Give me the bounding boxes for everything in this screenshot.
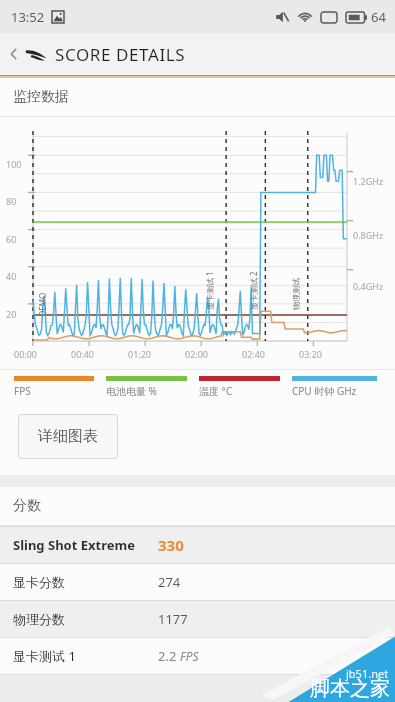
staticText: 电池电量 % xyxy=(106,384,157,398)
staticText: 02:40 xyxy=(242,348,266,360)
staticText: 01:20 xyxy=(128,348,152,360)
staticText: 13:52 xyxy=(11,8,45,26)
staticText: 脚本之家 xyxy=(310,676,390,701)
staticText: 03:20 xyxy=(299,348,323,360)
staticText: FPS xyxy=(180,648,199,664)
button[interactable]: 详细图表 xyxy=(18,414,118,459)
staticText: 监控数据 xyxy=(13,88,69,106)
button[interactable]: Back xyxy=(0,33,395,75)
staticText: DEMO xyxy=(36,292,47,316)
staticText: jb51.net xyxy=(346,666,389,681)
staticText: 显卡分数 xyxy=(13,574,145,590)
other: Back xyxy=(7,47,21,61)
staticText: 物理测试 xyxy=(291,278,301,310)
staticText: 1.2GHz xyxy=(353,175,384,187)
button[interactable]: 物理分数 xyxy=(0,601,395,637)
button[interactable]: 显卡分数 xyxy=(0,564,395,600)
staticText: 显卡测试 1 xyxy=(204,271,215,310)
staticText: 1177 xyxy=(158,610,188,628)
staticText: 详细图表 xyxy=(38,427,98,446)
button[interactable]: 显卡测试 1 xyxy=(0,638,395,674)
staticText: 分数 xyxy=(13,497,41,515)
staticText: 温度 °C xyxy=(199,384,233,398)
staticText: 0.4GHz xyxy=(353,280,384,292)
staticText: 02:00 xyxy=(185,348,209,360)
staticText: 0.8GHz xyxy=(353,229,384,241)
staticText: 64 xyxy=(371,8,386,26)
staticText: FPS xyxy=(14,384,31,398)
staticText: 物理分数 xyxy=(13,611,145,627)
staticText: 80 xyxy=(6,195,17,207)
staticText: 274 xyxy=(158,573,181,591)
staticText: 显卡测试 2 xyxy=(248,271,259,310)
staticText: Sling Shot Extreme xyxy=(13,536,145,554)
staticText: 00:00 xyxy=(14,348,38,360)
staticText: 显卡测试 1 xyxy=(13,647,145,665)
staticText: CPU 时钟 GHz xyxy=(292,384,357,398)
button[interactable]: Sling Shot Extreme xyxy=(0,527,395,563)
staticText: 60 xyxy=(6,233,17,245)
staticText: 00:40 xyxy=(71,348,95,360)
staticText: 40 xyxy=(6,270,17,282)
staticText: 330 xyxy=(158,535,184,555)
staticText: 100 xyxy=(6,158,22,170)
staticText: 2.2 xyxy=(158,647,180,665)
staticText: 20 xyxy=(6,308,17,320)
staticText: SCORE DETAILS xyxy=(55,43,186,66)
